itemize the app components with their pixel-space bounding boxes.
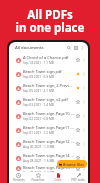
button[interactable]: A Chord of a Chance.pdf: [9, 53, 88, 67]
staticText: Sep 09 2021 · 0.9 MB: [23, 75, 54, 79]
button[interactable]: Recents: [9, 172, 28, 183]
button[interactable]: Favorite: [75, 99, 81, 105]
staticText: Aug 26 2021 · 1.3 MB: [23, 171, 55, 172]
staticText: Sep 03 2021 · 1.4 MB: [23, 103, 54, 107]
button[interactable]: Docs: [48, 172, 68, 183]
staticText: Aug 30 2021 · 1.0 MB: [23, 145, 55, 149]
button[interactable]: Beach Town sign.pdf: [9, 67, 88, 81]
button[interactable]: More options: [81, 113, 87, 119]
button[interactable]: Beach Town sign-Page12.pdf: [9, 137, 88, 151]
staticText: A Chord of a Chance.pdf: [23, 55, 69, 60]
button[interactable]: Search: [65, 44, 72, 51]
staticText: Beach Town sign.pdf: [23, 69, 62, 74]
staticText: Beach Town sign-Page12.pdf: [23, 139, 74, 144]
button[interactable]: More options: [81, 155, 87, 161]
button[interactable]: Beach Town sign_2 Preview.pdf: [9, 81, 88, 95]
button[interactable]: Beach Town sign_v2.pdf: [9, 95, 88, 109]
staticText: Recents: [13, 178, 25, 182]
staticText: Browse files: [63, 162, 85, 167]
staticText: Beach Town sign-Page14.pdf: [23, 153, 74, 158]
button[interactable]: Beach Town sign-Page14.pdf: [9, 151, 88, 165]
button[interactable]: More options: [81, 99, 87, 105]
staticText: Beach Town sign-Page10.pdf: [23, 111, 74, 116]
staticText: Sep 02 2021 · 0.8 MB: [23, 117, 54, 121]
button[interactable]: More options: [81, 127, 87, 133]
staticText: Beach Town sign-Page11.pdf: [23, 125, 74, 130]
button[interactable]: Favorite: [75, 57, 81, 63]
staticText: Favorites: [31, 178, 45, 182]
button[interactable]: PDF tools: [68, 172, 88, 183]
staticText: Aug 28 2021 · 1.6 MB: [23, 159, 55, 163]
staticText: Sep 14 2021 · 1.1 MB: [23, 61, 54, 65]
button[interactable]: Browse files: [57, 160, 87, 168]
staticText: Beach Town sign_2 Preview.pdf: [23, 83, 74, 88]
staticText: Sep 01 2021 · 1.2 MB: [23, 131, 54, 135]
button[interactable]: More options: [81, 71, 87, 77]
staticText: All PDFs in one place: [0, 7, 100, 36]
staticText: Beach Town sign-Page16.pdf: [23, 165, 74, 170]
button[interactable]: Favorites: [28, 172, 48, 183]
button[interactable]: Beach Town sign-Page10.pdf: [9, 109, 88, 123]
button[interactable]: More options: [81, 141, 87, 147]
button[interactable]: Favorite: [75, 85, 81, 91]
staticText: Docs: [54, 178, 62, 182]
button[interactable]: Favorite: [75, 155, 81, 161]
button[interactable]: Favorite: [75, 71, 81, 77]
button[interactable]: More options: [79, 45, 85, 51]
staticText: All documents: [15, 45, 44, 51]
button[interactable]: Favorite: [75, 141, 81, 147]
button[interactable]: Favorite: [75, 113, 81, 119]
button[interactable]: Favorite: [75, 166, 81, 172]
button[interactable]: More options: [81, 57, 87, 63]
button[interactable]: Beach Town sign-Page16.pdf: [9, 165, 88, 172]
staticText: Beach Town sign_v2.pdf: [23, 97, 68, 102]
button[interactable]: Favorite: [75, 127, 81, 133]
button[interactable]: More options: [81, 85, 87, 91]
button[interactable]: More options: [81, 166, 87, 172]
button[interactable]: Grid view: [72, 44, 79, 51]
staticText: PDF tools: [71, 178, 85, 182]
button[interactable]: Beach Town sign-Page11.pdf: [9, 123, 88, 137]
staticText: Sep 05 2021 · 2.1 MB: [23, 89, 54, 93]
